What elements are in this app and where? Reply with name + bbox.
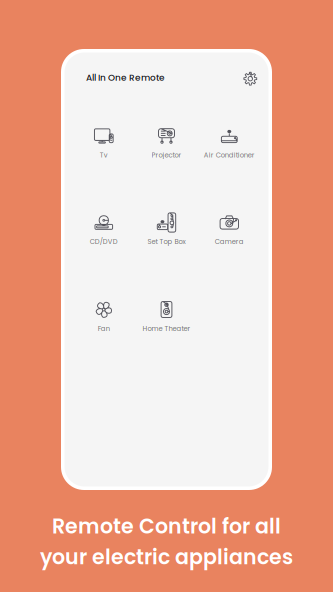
staticText: Tv [100, 150, 108, 160]
staticText: Camera [215, 237, 244, 246]
button[interactable]: Projector [136, 119, 196, 153]
button[interactable]: CD/DVD [74, 205, 134, 239]
staticText: your electric appliances [40, 543, 293, 571]
staticText: Air Conditioner [204, 150, 255, 160]
button[interactable]: Home Theater [136, 292, 196, 326]
button[interactable]: Air Conditioner [199, 119, 259, 153]
button[interactable]: Fan [74, 292, 134, 326]
button[interactable]: Settings [239, 67, 262, 90]
staticText: Set Top Box [147, 237, 185, 246]
staticText: Projector [151, 150, 181, 160]
button[interactable]: Tv [74, 119, 134, 153]
staticText: CD/DVD [90, 237, 118, 246]
button[interactable]: Camera [199, 205, 259, 239]
staticText: Home Theater [142, 324, 190, 333]
staticText: All In One Remote [86, 71, 165, 84]
staticText: Fan [98, 324, 110, 333]
staticText: Remote Control for all [52, 512, 281, 541]
button[interactable]: Set Top Box [136, 205, 196, 239]
